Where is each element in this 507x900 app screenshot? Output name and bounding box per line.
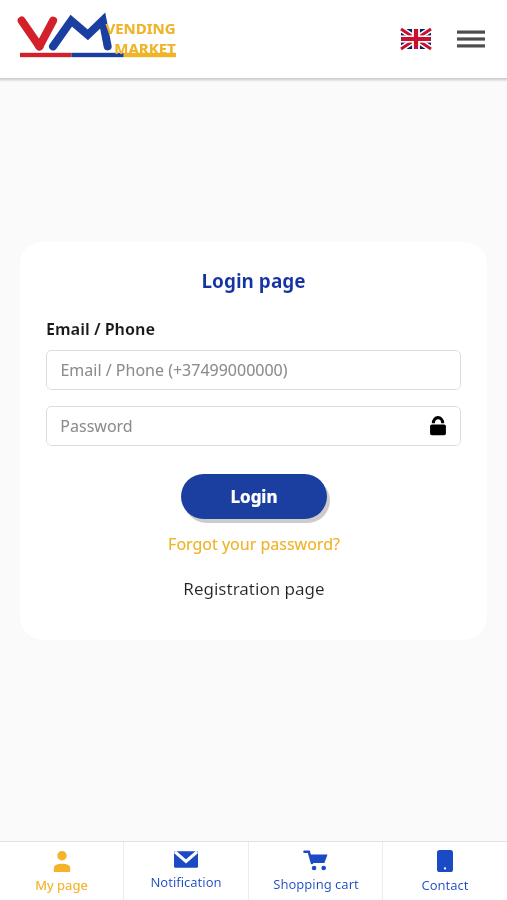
- staticText: Registration page: [183, 577, 325, 600]
- button[interactable]: Login: [181, 474, 327, 519]
- button[interactable]: Language: English: [399, 27, 433, 51]
- button[interactable]: VENDING: [20, 16, 176, 62]
- button[interactable]: Contact: [383, 842, 507, 900]
- staticText: Forgot your password?: [168, 533, 340, 555]
- button[interactable]: Menu: [453, 21, 489, 57]
- button[interactable]: Email / Phone (+37499000000): [46, 350, 461, 390]
- staticText: MARKET: [114, 38, 176, 58]
- button[interactable]: Password: [46, 406, 461, 446]
- staticText: My page: [35, 876, 88, 894]
- staticText: Login page: [201, 268, 306, 294]
- button[interactable]: Notification: [124, 842, 248, 900]
- staticText: Email / Phone: [46, 318, 155, 340]
- staticText: Contact: [421, 876, 469, 894]
- staticText: Login: [230, 485, 278, 508]
- staticText: Password: [60, 415, 133, 437]
- button[interactable]: My page: [0, 842, 123, 900]
- staticText: VENDING: [105, 18, 176, 38]
- button[interactable]: Forgot your password?: [46, 533, 461, 555]
- button[interactable]: Registration page: [46, 577, 461, 600]
- staticText: Email / Phone (+37499000000): [60, 359, 288, 381]
- button[interactable]: Shopping cart: [249, 842, 382, 900]
- staticText: Notification: [150, 873, 222, 891]
- staticText: Shopping cart: [273, 875, 359, 893]
